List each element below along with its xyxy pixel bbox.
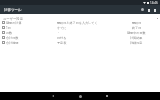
staticText: ユーザー設定 [3, 17, 23, 21]
staticText: 日付を [57, 36, 67, 40]
staticText: ・ [57, 31, 61, 35]
button[interactable]: Save [146, 7, 152, 13]
button[interactable]: Back [49, 92, 57, 100]
button[interactable]: 期間の計算 [0, 20, 160, 25]
staticText: すでに [57, 26, 67, 30]
button[interactable]: Home [76, 92, 84, 100]
button[interactable]: 月数 [0, 30, 160, 35]
staticText: 1日 [6, 26, 11, 30]
staticText: 月数 [6, 31, 13, 35]
button[interactable]: 合計日数 [0, 35, 160, 40]
staticText: 計算結果 [130, 36, 143, 40]
staticText: 開始日 [132, 21, 142, 25]
staticText: 計算ツール [4, 8, 22, 12]
staticText: 14:46 [150, 1, 158, 5]
staticText: 終了日 [132, 26, 142, 30]
button[interactable]: Search [139, 6, 146, 13]
staticText: 予定表 [57, 41, 67, 45]
button[interactable]: Recents [103, 92, 111, 100]
button[interactable]: 1日 [0, 25, 160, 30]
button[interactable]: More options [152, 7, 158, 13]
staticText: 期間の計算 [6, 21, 22, 25]
staticText: 開始日と終了日を入力してく [57, 21, 98, 25]
staticText: 合計日数 [6, 36, 19, 40]
staticText: 期間中の日数 [127, 31, 146, 35]
staticText: 合計時間 [6, 41, 19, 45]
staticText: 詳細設定 [130, 41, 143, 45]
button[interactable]: 合計時間 [0, 40, 160, 45]
